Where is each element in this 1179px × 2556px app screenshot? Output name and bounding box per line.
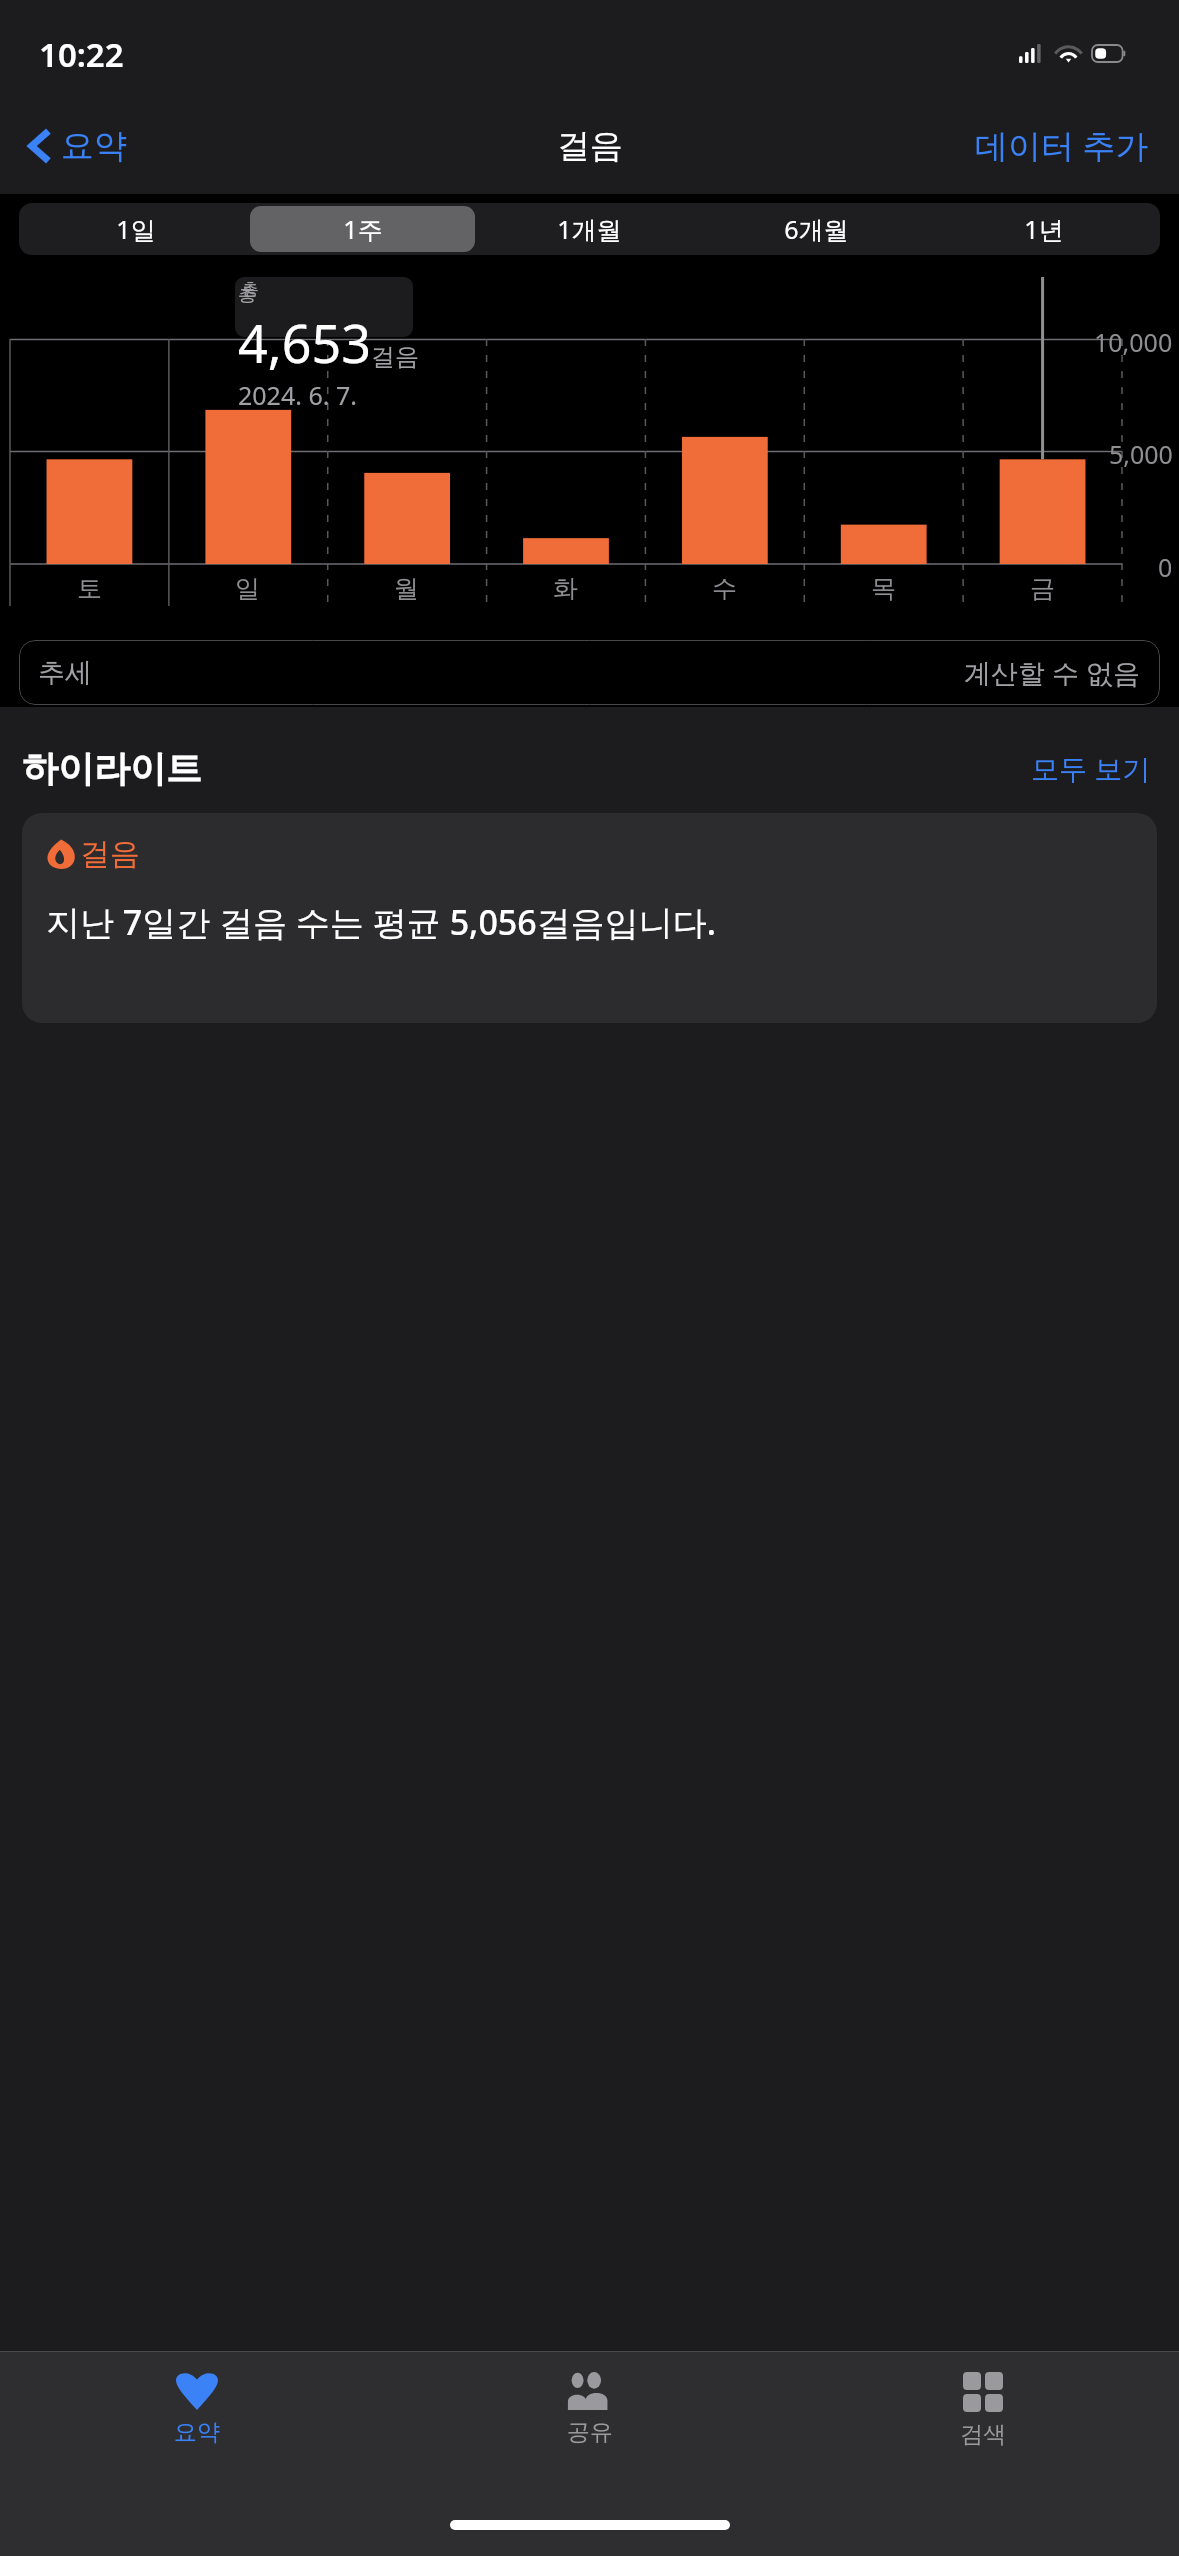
- button[interactable]: 요약: [0, 2366, 393, 2453]
- staticText: 계산할 수 없음: [964, 654, 1141, 691]
- staticText: 지난 7일간 걸음 수는 평균 5,056걸음입니다.: [46, 899, 716, 945]
- staticText: 토: [77, 573, 102, 604]
- staticText: 1주: [343, 212, 383, 246]
- button[interactable]: 1일: [23, 206, 248, 252]
- staticText: 걸음: [557, 125, 623, 167]
- button[interactable]: 추세: [19, 640, 1160, 705]
- button[interactable]: 걸음: [22, 813, 1157, 1023]
- staticText: 6개월: [784, 212, 849, 246]
- staticText: 수: [712, 573, 737, 604]
- button[interactable]: 6개월: [704, 206, 929, 252]
- staticText: 총: [242, 279, 259, 300]
- staticText: 요약: [174, 2418, 220, 2447]
- staticText: 1년: [1024, 212, 1064, 246]
- staticText: 공유: [567, 2418, 613, 2447]
- staticText: 금: [1030, 573, 1055, 604]
- staticText: 0: [1158, 550, 1173, 584]
- staticText: 일: [235, 573, 260, 604]
- staticText: 월: [394, 573, 419, 604]
- staticText: 하이라이트: [22, 746, 202, 791]
- staticText: 총: [238, 283, 257, 307]
- staticText: 걸음: [371, 342, 419, 372]
- staticText: 걸음: [80, 835, 140, 873]
- staticText: 추세: [38, 656, 92, 690]
- staticText: 2024. 6. 7.: [238, 378, 357, 412]
- staticText: 1개월: [557, 212, 622, 246]
- staticText: 5,000: [1109, 437, 1173, 471]
- button[interactable]: 검색: [786, 2366, 1179, 2455]
- button[interactable]: 공유: [393, 2366, 786, 2453]
- staticText: 10:22: [39, 32, 124, 77]
- staticText: 요약: [61, 125, 127, 167]
- staticText: 검색: [960, 2420, 1006, 2449]
- button[interactable]: 1년: [931, 206, 1156, 252]
- staticText: 10,000: [1094, 325, 1173, 359]
- button[interactable]: 요약: [22, 119, 135, 173]
- staticText: 목: [871, 573, 896, 604]
- button[interactable]: 모두 보기: [1025, 743, 1157, 793]
- staticText: 1일: [116, 212, 156, 246]
- button[interactable]: 1개월: [477, 206, 702, 252]
- button[interactable]: 데이터 추가: [967, 117, 1157, 174]
- staticText: 화: [553, 573, 578, 604]
- button[interactable]: 1주: [250, 206, 475, 252]
- staticText: 4,653: [238, 307, 371, 378]
